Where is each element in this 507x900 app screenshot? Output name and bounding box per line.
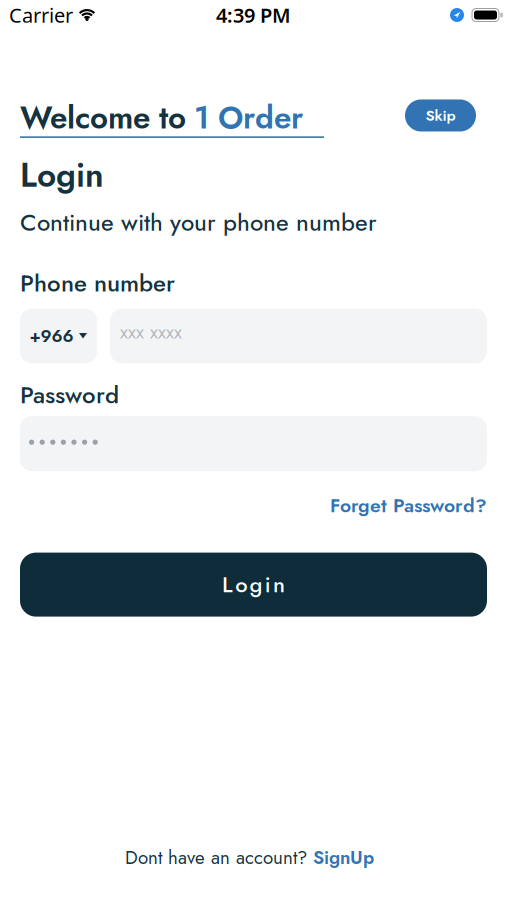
staticText: 4:39 PM [216,2,291,28]
staticText: Password [20,377,119,412]
button[interactable]: Password [20,416,487,471]
staticText: g [249,569,262,600]
staticText: Dont have an account? [125,844,307,871]
staticText: Skip [425,104,455,127]
staticText: Phone number [20,266,175,300]
button[interactable]: L [20,553,487,617]
staticText: Login [20,151,104,199]
staticText: SignUp [313,844,374,871]
staticText: Forget Password? [330,492,487,520]
staticText: L [222,569,233,600]
staticText: +966 [29,323,73,348]
staticText: Carrier [9,2,73,28]
staticText: Continue with your phone number [20,205,377,240]
staticText: i [265,569,271,600]
button[interactable]: Country code [20,308,97,363]
staticText: 1 Order [194,95,303,140]
staticText: xxx xxxx [120,318,182,345]
button[interactable]: Forget Password? [330,492,487,520]
button[interactable]: SignUp [313,844,374,871]
staticText: o [235,569,247,600]
button[interactable]: Skip [405,99,476,131]
staticText: Welcome to [20,95,186,140]
button[interactable]: Phone number [110,308,487,363]
staticText: n [273,569,285,600]
